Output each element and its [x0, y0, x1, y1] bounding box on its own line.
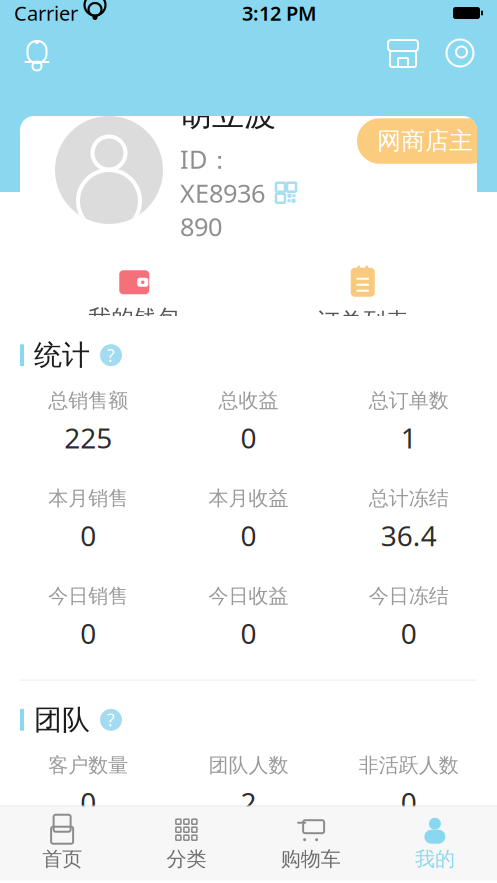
button[interactable]: Store	[387, 38, 419, 68]
button[interactable]: 订单列表	[248, 265, 477, 335]
staticText: 团队	[34, 703, 90, 737]
staticText: 0	[240, 419, 256, 456]
staticText: 总订单数	[369, 388, 449, 413]
button[interactable]: 我的	[373, 807, 497, 880]
staticText: 2	[240, 784, 256, 821]
staticText: 3:12 PM	[242, 0, 317, 26]
button[interactable]: Settings	[445, 38, 475, 68]
staticText: 总销售额	[48, 388, 128, 413]
staticText: 统计	[34, 338, 90, 372]
staticText: ?	[107, 708, 115, 731]
staticText: 0	[240, 517, 256, 554]
staticText: 总收益	[218, 388, 278, 413]
staticText: 我的	[415, 847, 455, 871]
button[interactable]: 网商店主	[357, 118, 493, 164]
staticText: 今日收益	[208, 584, 288, 608]
button[interactable]: 我的钱包	[20, 268, 248, 332]
staticText: 客户数量	[48, 753, 128, 778]
staticText: 非活跃人数	[359, 753, 459, 778]
button[interactable]: Help	[100, 344, 122, 366]
staticText: 0	[80, 784, 96, 821]
staticText: 0	[240, 614, 256, 652]
staticText: 1	[401, 419, 417, 456]
staticText: 今日销售	[48, 584, 128, 608]
staticText: 225	[64, 419, 112, 456]
staticText: 36.4	[381, 517, 437, 554]
staticText: 今日冻结	[369, 584, 449, 608]
button[interactable]: QR code	[275, 182, 297, 204]
staticText: 分类	[166, 847, 206, 871]
staticText: 0	[80, 614, 96, 652]
staticText: ?	[107, 344, 115, 367]
button[interactable]: 分类	[124, 807, 248, 880]
staticText: 购物车	[281, 847, 341, 871]
staticText: 网商店主	[377, 126, 473, 156]
staticText: 0	[401, 614, 417, 652]
staticText: 团队人数	[208, 753, 288, 778]
staticText: ID：XE8936890	[180, 142, 265, 243]
staticText: Carrier	[14, 0, 78, 26]
button[interactable]: Help	[100, 709, 122, 731]
staticText: 胡立波	[180, 95, 276, 134]
staticText: 我的钱包	[88, 304, 180, 332]
staticText: 0	[80, 517, 96, 554]
button[interactable]: 购物车	[248, 807, 373, 880]
staticText: 本月销售	[48, 486, 128, 511]
button[interactable]: Notifications	[22, 36, 52, 70]
staticText: 0	[401, 784, 417, 821]
staticText: 总计冻结	[369, 486, 449, 511]
staticText: 订单列表	[317, 307, 409, 335]
staticText: 本月收益	[208, 486, 288, 511]
button[interactable]: 首页	[0, 807, 124, 880]
staticText: 首页	[42, 847, 82, 871]
